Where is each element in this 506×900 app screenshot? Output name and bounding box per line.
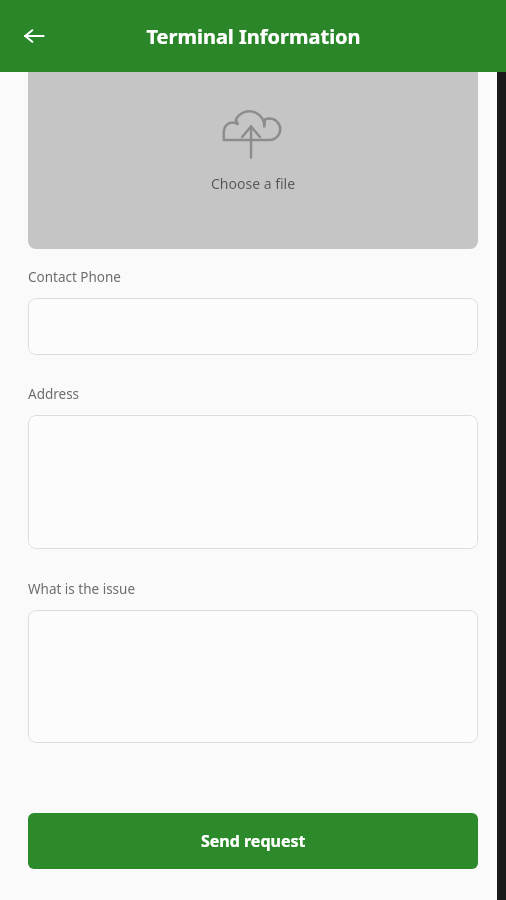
- button[interactable]: [28, 610, 478, 743]
- staticText: Contact Phone: [28, 268, 121, 286]
- button[interactable]: [28, 415, 478, 549]
- staticText: Terminal Information: [146, 23, 361, 50]
- button[interactable]: Send request: [28, 813, 478, 869]
- staticText: Choose a file: [211, 174, 296, 193]
- staticText: What is the issue: [28, 580, 136, 598]
- button[interactable]: [28, 298, 478, 355]
- button[interactable]: Choose a file: [28, 72, 478, 249]
- button[interactable]: Back: [14, 16, 54, 56]
- staticText: Address: [28, 385, 80, 403]
- staticText: Send request: [201, 830, 306, 852]
